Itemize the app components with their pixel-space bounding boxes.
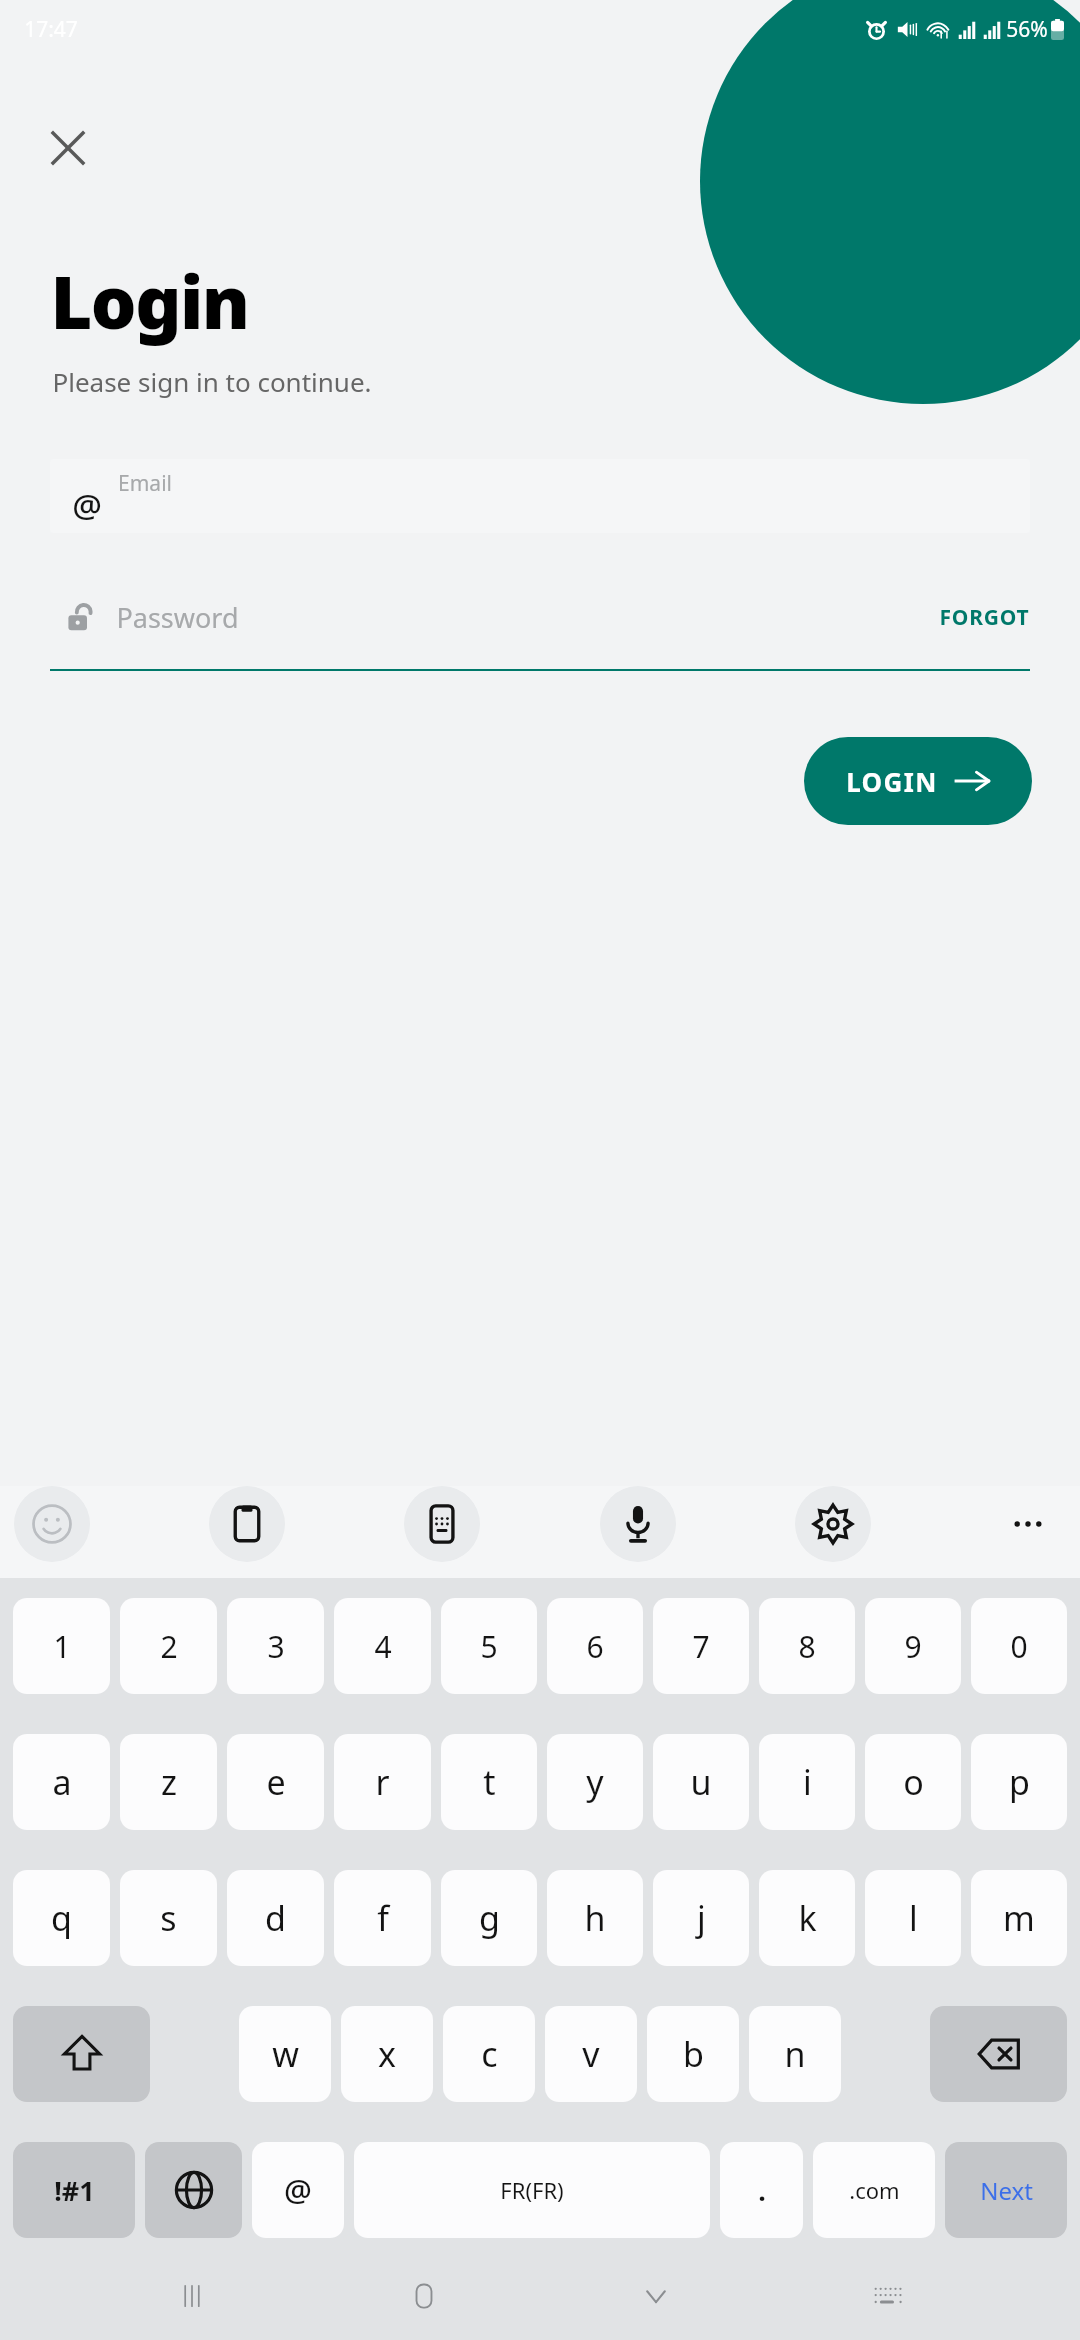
button[interactable]: h bbox=[547, 1870, 643, 1966]
button[interactable]: 4 bbox=[334, 1598, 431, 1694]
button[interactable]: Hide keyboard bbox=[616, 2256, 696, 2336]
button[interactable]: 8 bbox=[759, 1598, 855, 1694]
button[interactable]: Stickers bbox=[404, 1486, 480, 1562]
staticText: 5 bbox=[480, 1626, 498, 1667]
button[interactable]: t bbox=[441, 1734, 537, 1830]
staticText: 9 bbox=[904, 1626, 922, 1667]
staticText: x bbox=[378, 2031, 396, 2077]
button[interactable]: e bbox=[227, 1734, 324, 1830]
button[interactable]: p bbox=[971, 1734, 1067, 1830]
button[interactable]: Voice input bbox=[600, 1486, 676, 1562]
button[interactable]: z bbox=[120, 1734, 217, 1830]
staticText: 3 bbox=[267, 1626, 285, 1667]
button[interactable]: More bbox=[990, 1486, 1066, 1562]
button[interactable]: s bbox=[120, 1870, 217, 1966]
button[interactable]: k bbox=[759, 1870, 855, 1966]
staticText: q bbox=[51, 1895, 72, 1941]
button[interactable]: m bbox=[971, 1870, 1067, 1966]
button[interactable]: g bbox=[441, 1870, 537, 1966]
button[interactable]: Clipboard bbox=[209, 1486, 285, 1562]
staticText: 7 bbox=[692, 1626, 710, 1667]
button[interactable]: f bbox=[334, 1870, 431, 1966]
staticText: m bbox=[1003, 1895, 1035, 1941]
button[interactable]: i bbox=[759, 1734, 855, 1830]
staticText: y bbox=[586, 1759, 604, 1805]
button[interactable]: b bbox=[647, 2006, 739, 2102]
button[interactable]: 5 bbox=[441, 1598, 537, 1694]
staticText: Email bbox=[118, 469, 172, 498]
staticText: 2 bbox=[160, 1626, 178, 1667]
staticText: t bbox=[483, 1759, 496, 1805]
button[interactable]: o bbox=[865, 1734, 961, 1830]
staticText: h bbox=[584, 1895, 606, 1941]
button[interactable]: Change language bbox=[145, 2142, 242, 2238]
staticText: n bbox=[784, 2031, 806, 2077]
staticText: e bbox=[266, 1759, 286, 1805]
staticText: i bbox=[803, 1759, 812, 1805]
button[interactable]: 3 bbox=[227, 1598, 324, 1694]
staticText: g bbox=[479, 1895, 500, 1941]
button[interactable]: LOGIN bbox=[804, 737, 1032, 825]
staticText: !#1 bbox=[54, 2172, 95, 2209]
staticText: v bbox=[582, 2031, 600, 2077]
staticText: s bbox=[160, 1895, 177, 1941]
button[interactable]: @ bbox=[252, 2142, 344, 2238]
staticText: j bbox=[697, 1895, 706, 1941]
staticText: u bbox=[690, 1759, 712, 1805]
button[interactable]: Recents bbox=[152, 2256, 232, 2336]
button[interactable]: Shift bbox=[13, 2006, 150, 2102]
staticText: LOGIN bbox=[846, 764, 938, 799]
button[interactable]: a bbox=[13, 1734, 110, 1830]
button[interactable]: n bbox=[749, 2006, 841, 2102]
staticText: Login bbox=[50, 252, 249, 350]
button[interactable]: Home bbox=[384, 2256, 464, 2336]
staticText: r bbox=[375, 1759, 390, 1805]
button[interactable]: .com bbox=[813, 2142, 935, 2238]
staticText: .com bbox=[849, 2175, 900, 2205]
button[interactable]: l bbox=[865, 1870, 961, 1966]
button[interactable]: Close bbox=[40, 120, 96, 176]
button[interactable]: c bbox=[443, 2006, 535, 2102]
button[interactable]: v bbox=[545, 2006, 637, 2102]
staticText: 17:47 bbox=[24, 15, 78, 44]
button[interactable]: Emoji bbox=[14, 1486, 90, 1562]
button[interactable]: j bbox=[653, 1870, 749, 1966]
button[interactable]: 1 bbox=[13, 1598, 110, 1694]
button[interactable]: FR(FR) bbox=[354, 2142, 710, 2238]
button[interactable]: Next bbox=[945, 2142, 1067, 2238]
staticText: a bbox=[52, 1759, 72, 1805]
button[interactable]: Backspace bbox=[930, 2006, 1067, 2102]
button[interactable]: w bbox=[239, 2006, 331, 2102]
button[interactable]: Switch keyboard bbox=[848, 2256, 928, 2336]
button[interactable]: u bbox=[653, 1734, 749, 1830]
staticText: d bbox=[265, 1895, 286, 1941]
button[interactable]: FORGOT bbox=[939, 603, 1030, 632]
button[interactable]: x bbox=[341, 2006, 433, 2102]
button[interactable]: 2 bbox=[120, 1598, 217, 1694]
staticText: o bbox=[903, 1759, 924, 1805]
button[interactable]: q bbox=[13, 1870, 110, 1966]
staticText: c bbox=[481, 2031, 498, 2077]
button[interactable]: d bbox=[227, 1870, 324, 1966]
button[interactable]: r bbox=[334, 1734, 431, 1830]
staticText: 0 bbox=[1010, 1626, 1028, 1667]
staticText: @ bbox=[284, 2169, 312, 2211]
button[interactable]: . bbox=[720, 2142, 803, 2238]
staticText: Please sign in to continue. bbox=[52, 364, 372, 399]
button[interactable]: Password bbox=[50, 589, 1030, 645]
staticText: f bbox=[377, 1895, 389, 1941]
staticText: Password bbox=[116, 599, 239, 636]
staticText: 8 bbox=[798, 1626, 816, 1667]
staticText: 6 bbox=[586, 1626, 604, 1667]
staticText: @ bbox=[72, 483, 102, 528]
button[interactable]: 6 bbox=[547, 1598, 643, 1694]
button[interactable]: !#1 bbox=[13, 2142, 135, 2238]
button[interactable]: y bbox=[547, 1734, 643, 1830]
button[interactable]: 9 bbox=[865, 1598, 961, 1694]
button[interactable]: 0 bbox=[971, 1598, 1067, 1694]
button[interactable]: Settings bbox=[795, 1486, 871, 1562]
staticText: l bbox=[909, 1895, 918, 1941]
button[interactable]: Email bbox=[50, 459, 1030, 533]
staticText: b bbox=[683, 2031, 704, 2077]
button[interactable]: 7 bbox=[653, 1598, 749, 1694]
